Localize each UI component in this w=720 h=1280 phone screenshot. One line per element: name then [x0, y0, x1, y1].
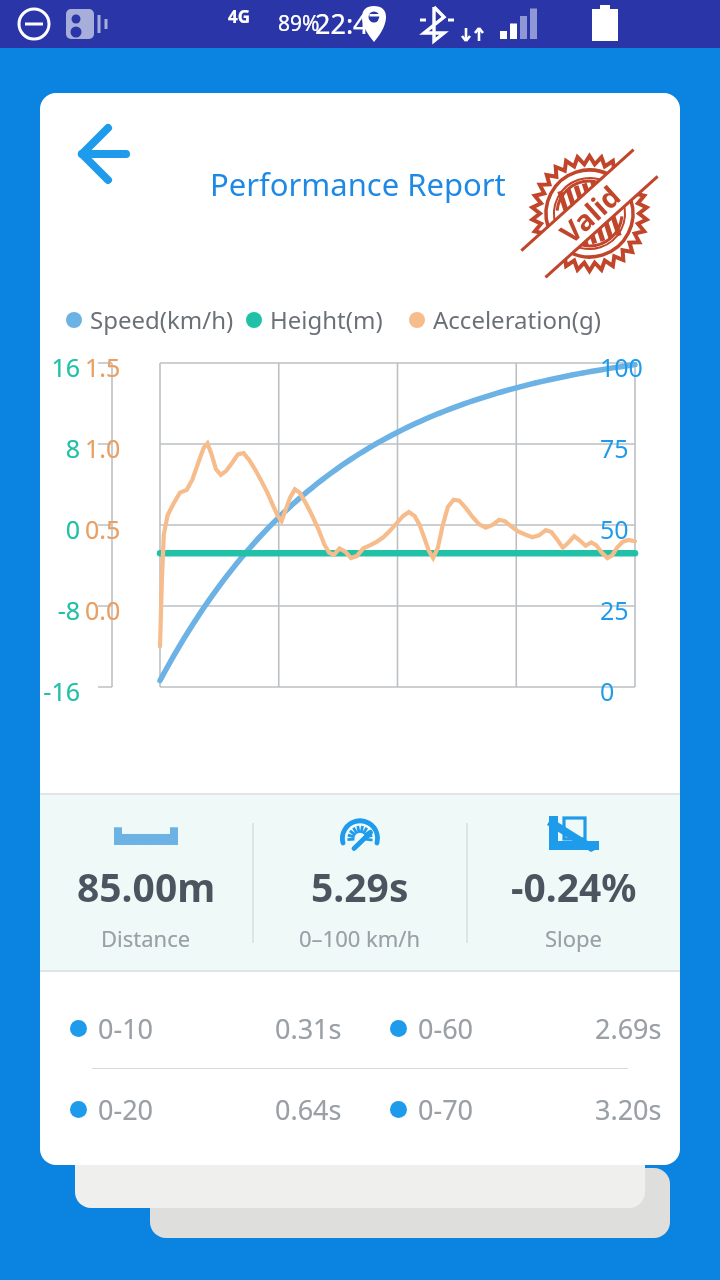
button[interactable]: 0-60 [360, 988, 680, 1068]
staticText: 4G [228, 5, 251, 28]
staticText: Performance Report [210, 163, 506, 205]
button[interactable]: Height(m) [246, 303, 383, 336]
staticText: Speed(km/h) [90, 303, 234, 336]
staticText: 1.5 [85, 350, 121, 384]
button[interactable]: Acceleration(g) [409, 303, 601, 336]
staticText: -8 [57, 593, 80, 627]
staticText: 50 [600, 512, 629, 546]
staticText: 0 [600, 674, 615, 708]
staticText: 0–100 km/h [299, 923, 421, 953]
button[interactable]: Acceleration time [254, 795, 466, 970]
staticText: 25 [600, 593, 629, 627]
staticText: Valid [551, 177, 628, 251]
button[interactable]: Speed(km/h) [66, 303, 234, 336]
button[interactable]: Distance [40, 795, 252, 970]
staticText: 2.69s [595, 1010, 662, 1047]
staticText: -16 [43, 674, 80, 708]
other: Distance [110, 820, 182, 848]
staticText: 0 [65, 512, 80, 546]
staticText: Height(m) [270, 303, 383, 336]
staticText: Distance [101, 923, 191, 953]
staticText: 75 [600, 431, 629, 465]
staticText: 0.0 [85, 593, 121, 627]
staticText: 0-20 [98, 1091, 154, 1128]
staticText: 89% [278, 9, 320, 38]
staticText: Acceleration(g) [433, 303, 601, 336]
staticText: -0.24% [511, 860, 637, 913]
staticText: 3.20s [595, 1091, 662, 1128]
staticText: 1.0 [85, 431, 121, 465]
staticText: 0-70 [418, 1091, 474, 1128]
staticText: 85.00m [77, 860, 216, 913]
staticText: 0.5 [85, 512, 121, 546]
staticText: 22:47 [315, 5, 385, 42]
button[interactable]: 0-70 [360, 1069, 680, 1149]
button[interactable]: Back [58, 119, 148, 189]
staticText: 100 [600, 350, 643, 384]
other: Acceleration time [332, 812, 388, 856]
staticText: 0.31s [275, 1010, 342, 1047]
button[interactable]: Slope [468, 795, 680, 970]
staticText: 0.64s [275, 1091, 342, 1128]
staticText: 0-10 [98, 1010, 154, 1047]
staticText: 16 [51, 350, 80, 384]
button[interactable]: 0-10 [40, 988, 360, 1068]
staticText: 0-60 [418, 1010, 474, 1047]
staticText: 8 [65, 431, 80, 465]
other: Slope [543, 812, 605, 856]
staticText: Slope [545, 923, 603, 953]
staticText: 5.29s [311, 860, 409, 913]
button[interactable]: 0-20 [40, 1069, 360, 1149]
